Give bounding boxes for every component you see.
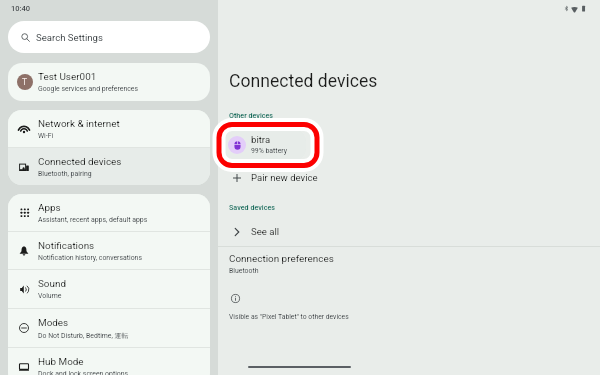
staticText: Bluetooth, pairing xyxy=(38,170,92,178)
button[interactable]: Network & internet xyxy=(8,110,210,147)
staticText: Google services and preferences xyxy=(38,85,139,93)
button[interactable]: Connection preferences xyxy=(229,253,399,273)
button[interactable]: Notifications xyxy=(8,232,210,269)
staticText: Network & internet xyxy=(38,118,120,130)
staticText: Sound xyxy=(38,278,67,290)
staticText: Wi-Fi xyxy=(38,132,54,140)
staticText: Other devices xyxy=(229,111,274,119)
button[interactable]: bitra xyxy=(222,130,306,160)
staticText: See all xyxy=(251,226,280,237)
button[interactable]: Pair new device xyxy=(222,167,362,188)
staticText: Volume xyxy=(38,292,62,300)
button[interactable]: T xyxy=(8,63,210,101)
staticText: Visible as "Pixel Tablet" to other devic… xyxy=(229,313,349,321)
staticText: Bluetooth xyxy=(229,267,259,275)
staticText: Search Settings xyxy=(36,32,103,43)
staticText: Notifications xyxy=(38,240,95,252)
staticText: Connected devices xyxy=(229,71,378,92)
button[interactable]: Apps xyxy=(8,194,210,231)
button[interactable]: Connected devices xyxy=(8,148,210,185)
staticText: 99% battery xyxy=(251,147,287,155)
staticText: Do Not Disturb, Bedtime, 運転 xyxy=(38,331,129,340)
staticText: Saved devices xyxy=(229,203,275,211)
staticText: Connected devices xyxy=(38,156,122,168)
other: Wi-Fi xyxy=(571,6,578,13)
staticText: Modes xyxy=(38,317,69,329)
button[interactable]: Hub Mode xyxy=(8,348,210,375)
other: Battery xyxy=(580,5,587,12)
staticText: Assistant, recent apps, default apps xyxy=(38,216,148,224)
other: Bluetooth xyxy=(564,6,569,11)
staticText: Connection preferences xyxy=(229,253,334,265)
staticText: bitra xyxy=(251,134,271,145)
button[interactable]: Modes xyxy=(8,309,210,347)
button[interactable]: Sound xyxy=(8,270,210,308)
staticText: Dock and lock screen options xyxy=(38,370,129,375)
staticText: T xyxy=(22,77,28,87)
button[interactable]: Search Settings xyxy=(8,21,210,53)
staticText: Hub Mode xyxy=(38,356,84,368)
staticText: Apps xyxy=(38,202,61,214)
staticText: Pair new device xyxy=(251,172,318,183)
button[interactable]: See all xyxy=(222,221,342,242)
staticText: Notification history, conversations xyxy=(38,254,142,262)
other: Information xyxy=(231,294,240,303)
staticText: Test User001 xyxy=(38,71,97,83)
staticText: 10:40 xyxy=(11,4,31,13)
